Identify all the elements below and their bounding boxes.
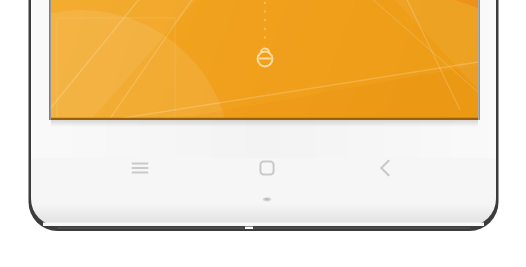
button[interactable]: Menu — [117, 145, 163, 191]
button[interactable]: Home — [244, 145, 290, 191]
button[interactable]: Back — [362, 145, 408, 191]
